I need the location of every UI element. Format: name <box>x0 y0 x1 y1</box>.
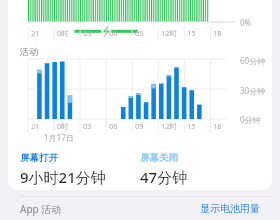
staticText: 15 <box>187 121 196 131</box>
button[interactable]: 屏幕打开 <box>20 152 140 187</box>
staticText: 60分钟 <box>240 55 266 66</box>
staticText: 06 <box>109 121 118 131</box>
staticText: 03 <box>83 28 92 38</box>
staticText: 0时 <box>57 121 69 131</box>
staticText: 47分钟 <box>140 167 188 187</box>
staticText: 12时 <box>161 121 178 131</box>
staticText: 21 <box>31 121 40 131</box>
staticText: 21 <box>31 28 40 38</box>
staticText: 0% <box>240 17 252 28</box>
staticText: 屏幕关闭 <box>140 152 178 164</box>
staticText: 03 <box>83 121 92 131</box>
staticText: 18 <box>213 121 222 131</box>
staticText: 09 <box>135 121 144 131</box>
staticText: 1月17日 <box>44 132 74 143</box>
staticText: 15 <box>187 28 196 38</box>
staticText: 18 <box>213 28 222 38</box>
staticText: 9小时21分钟 <box>20 167 106 187</box>
staticText: 30分钟 <box>240 85 266 96</box>
staticText: 活动 <box>20 46 38 57</box>
staticText: 12时 <box>161 28 178 38</box>
staticText: 0时 <box>57 28 69 38</box>
staticText: 显示电池用量 <box>200 202 260 215</box>
staticText: 0分钟 <box>240 114 261 125</box>
button[interactable]: 屏幕关闭 <box>140 152 240 187</box>
button[interactable]: 显示电池用量 <box>200 202 260 215</box>
staticText: 屏幕打开 <box>20 152 58 164</box>
staticText: App 活动 <box>20 202 62 216</box>
staticText: 09 <box>135 28 144 38</box>
staticText: 06 <box>109 28 118 38</box>
